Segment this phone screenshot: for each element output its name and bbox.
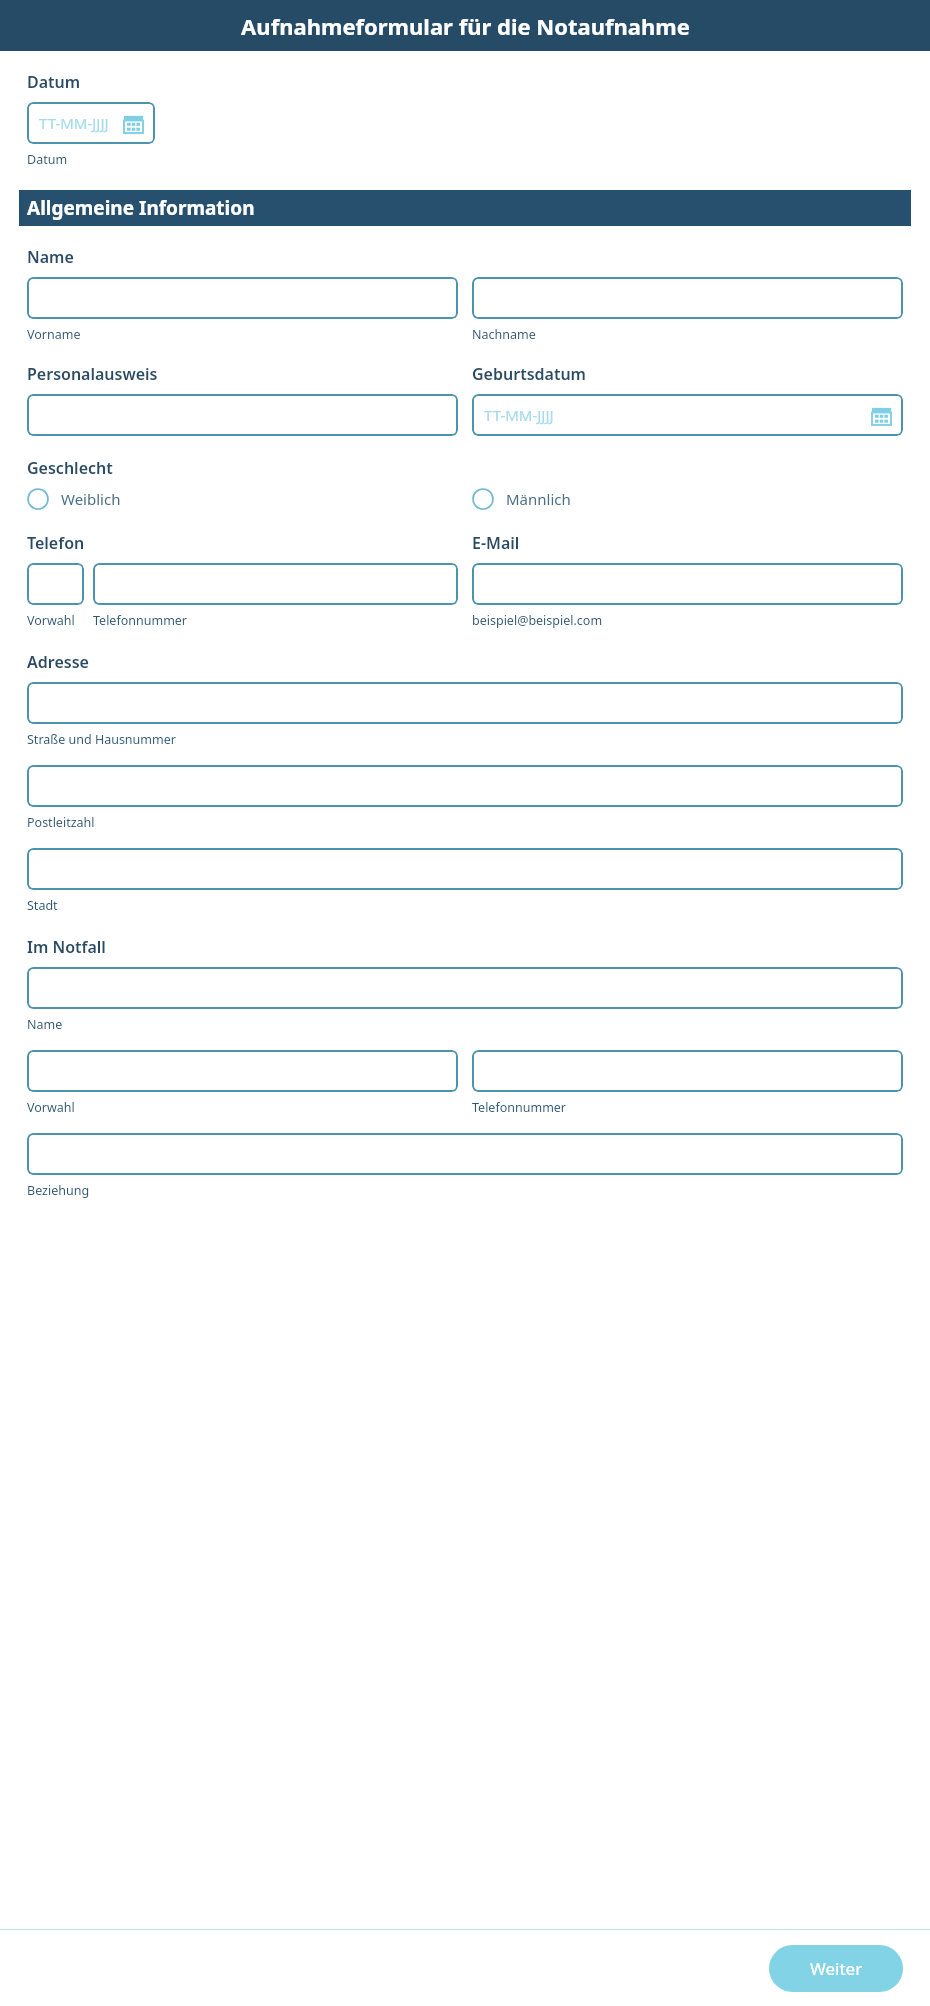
staticText: Telefon [27, 532, 85, 554]
staticText: Vorname [27, 326, 81, 343]
staticText: Allgemeine Information [27, 195, 255, 221]
staticText: TT-MM-JJJJ [484, 405, 554, 425]
staticText: Stadt [27, 897, 58, 914]
staticText: beispiel@beispiel.com [472, 612, 603, 629]
staticText: TT-MM-JJJJ [39, 113, 109, 133]
staticText: Geburtsdatum [472, 363, 586, 385]
staticText: Adresse [27, 651, 89, 673]
button[interactable]: Männlich [472, 488, 903, 510]
button[interactable] [472, 277, 903, 319]
button[interactable]: TT-MM-JJJJ [472, 394, 903, 436]
other: Kalender öffnen [124, 114, 143, 133]
button[interactable] [27, 563, 84, 605]
button[interactable]: Weiter [769, 1945, 903, 1992]
button[interactable] [27, 394, 458, 436]
staticText: Weiter [810, 1957, 863, 1980]
staticText: Name [27, 1016, 63, 1033]
button[interactable] [27, 1050, 458, 1092]
button[interactable]: TT-MM-JJJJ [27, 102, 155, 144]
button[interactable] [27, 277, 458, 319]
button[interactable] [27, 848, 903, 890]
button[interactable] [472, 1050, 903, 1092]
staticText: Männlich [506, 489, 571, 509]
other: Kalender öffnen [872, 406, 891, 425]
button[interactable] [27, 765, 903, 807]
staticText: Nachname [472, 326, 536, 343]
button[interactable] [27, 1133, 903, 1175]
staticText: Vorwahl [27, 1099, 75, 1116]
button[interactable] [27, 967, 903, 1009]
staticText: Geschlecht [27, 457, 113, 479]
staticText: Weiblich [61, 489, 121, 509]
staticText: Telefonnummer [93, 612, 188, 629]
staticText: Personalausweis [27, 363, 158, 385]
button[interactable]: Weiblich [27, 488, 458, 510]
staticText: E-Mail [472, 532, 520, 554]
staticText: Telefonnummer [472, 1099, 567, 1116]
staticText: Beziehung [27, 1182, 90, 1199]
staticText: Postleitzahl [27, 814, 95, 831]
button[interactable] [27, 682, 903, 724]
button[interactable] [472, 563, 903, 605]
staticText: Vorwahl [27, 612, 75, 629]
staticText: Name [27, 246, 74, 268]
staticText: Datum [27, 151, 68, 168]
staticText: Im Notfall [27, 936, 106, 958]
button[interactable] [93, 563, 458, 605]
staticText: Straße und Hausnummer [27, 731, 176, 748]
staticText: Datum [27, 71, 81, 93]
staticText: Aufnahmeformular für die Notaufnahme [241, 11, 690, 41]
